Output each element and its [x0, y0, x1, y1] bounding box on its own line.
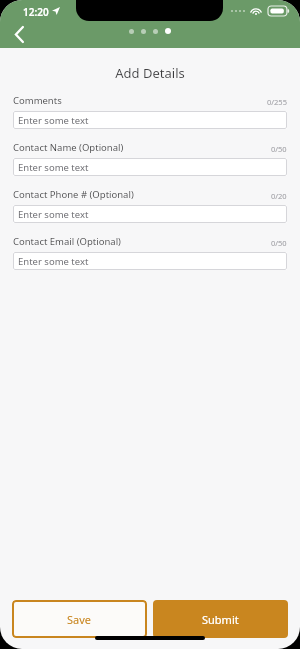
staticText: Contact Email (Optional) [13, 235, 121, 248]
staticText: Add Details [0, 64, 300, 82]
staticText: Enter some text [18, 161, 89, 174]
button[interactable]: Enter some text [13, 252, 287, 270]
staticText: Enter some text [18, 255, 89, 268]
staticText: Comments [13, 94, 62, 107]
staticText: 12:20 [23, 5, 49, 19]
button[interactable]: Submit [153, 600, 288, 638]
button[interactable]: Enter some text [13, 111, 287, 129]
staticText: Save [67, 612, 92, 627]
button[interactable]: Step [141, 29, 146, 34]
staticText: Contact Phone # (Optional) [13, 188, 134, 201]
button[interactable]: Enter some text [13, 158, 287, 176]
button[interactable]: Step [129, 29, 134, 34]
button[interactable]: Enter some text [13, 205, 287, 223]
button[interactable]: Current step [165, 28, 171, 34]
staticText: Enter some text [18, 208, 89, 221]
staticText: 0/50 [271, 144, 287, 154]
staticText: Submit [202, 612, 239, 627]
staticText: Contact Name (Optional) [13, 141, 124, 154]
button[interactable]: Step [153, 29, 158, 34]
button[interactable]: Back [5, 20, 33, 48]
staticText: 0/255 [267, 97, 287, 107]
staticText: Enter some text [18, 114, 89, 127]
button[interactable]: Save [12, 600, 147, 638]
staticText: 0/20 [271, 191, 287, 201]
staticText: 0/50 [271, 238, 287, 248]
